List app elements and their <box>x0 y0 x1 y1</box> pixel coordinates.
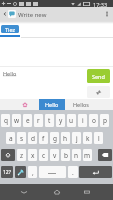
staticText: d <box>31 134 35 143</box>
staticText: 17:33 <box>93 1 108 8</box>
button[interactable]: x <box>28 149 37 161</box>
button[interactable]: Send <box>87 69 110 83</box>
staticText: b <box>64 151 68 160</box>
staticText: r <box>37 116 40 125</box>
button[interactable]: h <box>61 132 70 144</box>
button[interactable]: Hello <box>39 99 65 110</box>
staticText: a <box>9 134 13 143</box>
staticText: u <box>69 116 74 125</box>
button[interactable]: w <box>12 114 21 127</box>
button[interactable]: l <box>94 132 103 144</box>
button[interactable]: Keyboard settings <box>15 166 26 178</box>
staticText: z <box>20 151 24 160</box>
staticText: m <box>84 151 91 160</box>
staticText: Write new <box>18 11 47 19</box>
staticText: . <box>72 168 74 177</box>
button[interactable] <box>39 166 66 178</box>
staticText: c <box>42 151 46 160</box>
button[interactable]: z <box>17 149 26 161</box>
staticText: 12? <box>3 169 11 176</box>
button[interactable]: e <box>23 114 32 127</box>
staticText: g <box>53 134 57 143</box>
staticText: k <box>86 134 90 143</box>
button[interactable]: Symbols <box>1 166 13 178</box>
staticText: n <box>74 151 79 160</box>
staticText: j <box>76 134 78 143</box>
button[interactable]: t <box>45 114 54 127</box>
button[interactable]: r <box>34 114 43 127</box>
staticText: Hellos <box>73 101 89 108</box>
button[interactable]: p <box>100 114 109 127</box>
button[interactable]: . <box>68 166 78 178</box>
button[interactable]: u <box>67 114 76 127</box>
button[interactable]: Recents <box>77 184 97 200</box>
staticText: l <box>98 134 100 143</box>
staticText: i <box>82 116 84 125</box>
button[interactable]: j <box>72 132 81 144</box>
button[interactable]: Back <box>0 9 10 19</box>
staticText: Hello <box>3 70 17 77</box>
button[interactable]: Hide keyboard <box>14 184 34 200</box>
button[interactable]: Tiez <box>1 25 19 33</box>
button[interactable]: a <box>6 132 15 144</box>
button[interactable]: g <box>50 132 59 144</box>
staticText: Tiez <box>5 26 16 33</box>
staticText: p <box>103 116 107 125</box>
staticText: f <box>42 134 45 143</box>
button[interactable]: Attach <box>87 86 110 98</box>
button[interactable]: v <box>50 149 59 161</box>
button[interactable]: Shift <box>1 149 15 161</box>
staticText: y <box>59 116 63 125</box>
button[interactable]: b <box>61 149 70 161</box>
button[interactable]: n <box>72 149 81 161</box>
button[interactable]: , <box>28 166 37 178</box>
staticText: o <box>92 116 96 125</box>
button[interactable]: q <box>1 114 10 127</box>
button[interactable]: Hellos <box>65 99 97 110</box>
staticText: , <box>32 168 34 177</box>
button[interactable]: Enter <box>79 166 112 178</box>
button[interactable]: k <box>83 132 92 144</box>
button[interactable]: c <box>39 149 48 161</box>
staticText: w <box>14 116 20 125</box>
button[interactable]: m <box>83 149 92 161</box>
staticText: Hello <box>45 101 59 108</box>
button[interactable]: s <box>17 132 26 144</box>
button[interactable]: More options <box>101 8 113 20</box>
staticText: e <box>26 116 30 125</box>
staticText: s <box>20 134 24 143</box>
button[interactable]: d <box>28 132 37 144</box>
button[interactable]: f <box>39 132 48 144</box>
staticText: h <box>63 134 68 143</box>
button[interactable]: Home <box>47 184 67 200</box>
staticText: t <box>48 116 51 125</box>
staticText: Send <box>92 73 105 80</box>
button[interactable]: y <box>56 114 65 127</box>
staticText: v <box>53 151 57 160</box>
staticText: x <box>31 151 35 160</box>
button[interactable]: i <box>78 114 87 127</box>
staticText: q <box>4 116 8 125</box>
button[interactable]: Backspace <box>98 149 112 161</box>
button[interactable]: o <box>89 114 98 127</box>
